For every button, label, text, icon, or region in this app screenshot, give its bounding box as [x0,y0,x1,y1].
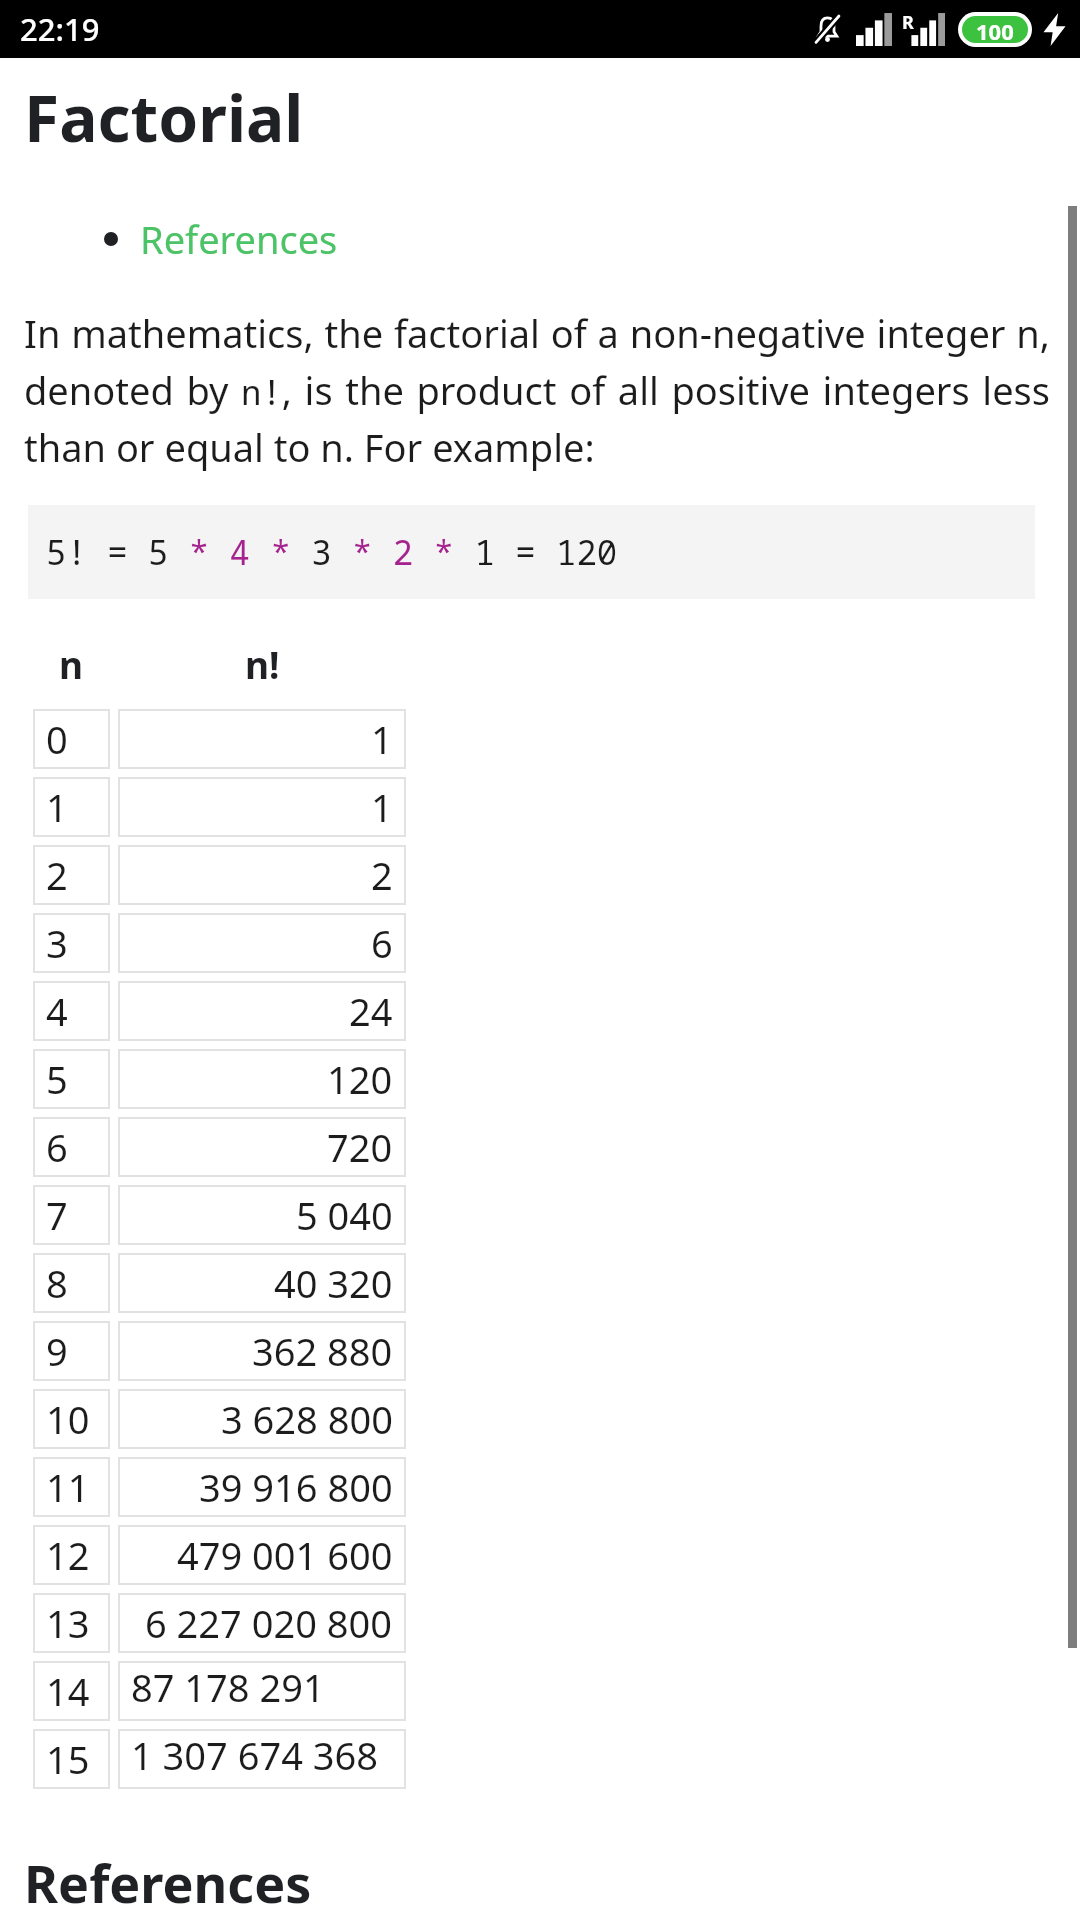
staticText: 100 [976,16,1014,43]
button[interactable]: 15 [33,1729,406,1789]
staticText: 24 [349,985,393,1037]
staticText: 14 [46,1665,90,1717]
button[interactable]: 10 [33,1389,406,1449]
staticText: 3 628 800 [221,1393,393,1445]
staticText: 5 040 [296,1189,393,1241]
staticText: 6 [46,1121,68,1173]
staticText: 1 [46,781,68,833]
staticText: 1 307 674 368 000 [131,1729,393,1789]
staticText: n [59,639,84,689]
staticText: 5 [46,1053,68,1105]
staticText: 2 [46,849,68,901]
staticText: 12 [46,1529,90,1581]
button[interactable]: 13 [33,1593,406,1653]
other: Silent mode [812,13,843,46]
button[interactable]: 14 [33,1661,406,1721]
button[interactable]: 6 [33,1117,406,1177]
staticText: 1 [371,781,393,833]
staticText: 1 [371,713,393,765]
staticText: 6 [371,917,393,969]
staticText: 8 [46,1257,68,1309]
button[interactable]: 1 [33,777,406,837]
staticText: 5! = 5 * 4 * 3 * 2 * 1 = 120 [46,529,618,575]
staticText: 7 [46,1189,68,1241]
button[interactable]: 5 [33,1049,406,1109]
staticText: References [24,1847,312,1918]
other: Signal [856,13,892,46]
button[interactable]: 2 [33,845,406,905]
button[interactable]: 3 [33,913,406,973]
staticText: References [140,213,338,265]
other: Charging [1043,13,1066,46]
button[interactable]: 8 [33,1253,406,1313]
staticText: 15 [46,1733,90,1785]
button[interactable]: 7 [33,1185,406,1245]
staticText: 10 [46,1393,90,1445]
button[interactable]: 11 [33,1457,406,1517]
staticText: 2 [371,849,393,901]
other: Battery 100 percent [958,12,1032,47]
staticText: 720 [327,1121,393,1173]
staticText: 22:19 [20,8,100,50]
staticText: 4 [46,985,68,1037]
staticText: 39 916 800 [199,1461,393,1513]
button[interactable]: 0 [33,709,406,769]
staticText: 87 178 291 200 [131,1661,393,1721]
staticText: 120 [327,1053,393,1105]
staticText: 40 320 [274,1257,393,1309]
button[interactable]: 9 [33,1321,406,1381]
staticText: Factorial [24,74,304,161]
button[interactable]: References [0,207,1080,271]
button[interactable]: 4 [33,981,406,1041]
staticText: 11 [46,1461,90,1513]
staticText: 6 227 020 800 [145,1597,393,1649]
staticText: In mathematics, the factorial of a non-n… [24,307,1050,473]
staticText: 479 001 600 [177,1529,393,1581]
staticText: R [902,10,914,35]
staticText: n! [245,639,280,689]
staticText: 13 [46,1597,90,1649]
other: Roaming signal [903,13,945,46]
staticText: 0 [46,713,68,765]
button[interactable]: 12 [33,1525,406,1585]
staticText: 9 [46,1325,68,1377]
staticText: 3 [46,917,68,969]
staticText: 362 880 [252,1325,393,1377]
